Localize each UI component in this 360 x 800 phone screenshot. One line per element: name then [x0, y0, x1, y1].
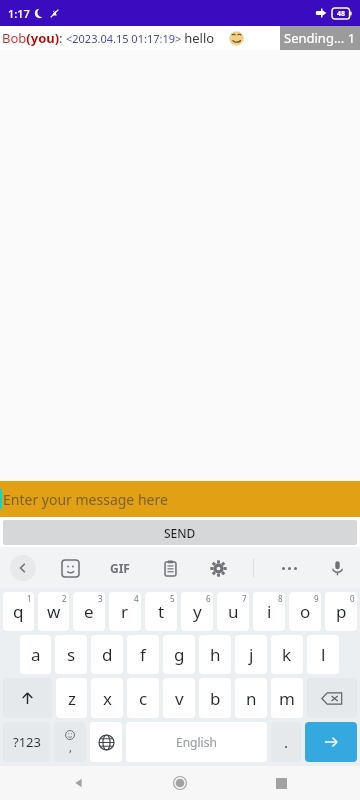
button[interactable]: GIF: [105, 553, 135, 583]
staticText: f: [140, 643, 146, 666]
staticText: t: [158, 600, 165, 623]
button[interactable]: Change language: [90, 722, 122, 762]
staticText: 5: [170, 593, 175, 604]
button[interactable]: Clipboard: [157, 555, 183, 581]
button[interactable]: a: [20, 635, 51, 674]
staticText: b: [210, 687, 221, 710]
staticText: Enter your message here: [3, 490, 168, 509]
staticText: .: [284, 732, 289, 752]
staticText: 9: [314, 593, 319, 604]
staticText: n: [246, 687, 257, 710]
button[interactable]: Emoji and comma: [54, 722, 86, 762]
button[interactable]: Recent apps: [259, 766, 303, 800]
button[interactable]: Back: [57, 766, 101, 800]
button[interactable]: q: [3, 592, 34, 631]
button[interactable]: i: [253, 592, 285, 631]
button[interactable]: SEND: [3, 520, 357, 545]
button[interactable]: u: [217, 592, 249, 631]
staticText: h: [210, 643, 221, 666]
staticText: 48: [337, 9, 346, 19]
staticText: q: [13, 600, 24, 623]
button[interactable]: Enter your message here: [0, 481, 360, 517]
button[interactable]: k: [271, 635, 303, 674]
button[interactable]: c: [127, 678, 159, 718]
staticText: o: [300, 600, 311, 623]
button[interactable]: e: [73, 592, 105, 631]
button[interactable]: Settings: [205, 555, 231, 581]
button[interactable]: s: [55, 635, 87, 674]
staticText: y: [193, 600, 202, 623]
button[interactable]: p: [325, 592, 357, 631]
staticText: x: [103, 687, 112, 710]
staticText: GIF: [110, 560, 130, 576]
staticText: SEND: [164, 525, 196, 541]
staticText: 8: [278, 593, 283, 604]
staticText: 2: [62, 593, 67, 604]
button[interactable]: v: [163, 678, 195, 718]
button[interactable]: Home: [158, 766, 202, 800]
staticText: s: [67, 643, 76, 666]
staticText: 6: [206, 593, 211, 604]
staticText: a: [31, 643, 41, 666]
staticText: c: [139, 687, 148, 710]
staticText: i: [267, 600, 272, 623]
button[interactable]: r: [109, 592, 141, 631]
staticText: ,: [69, 740, 72, 755]
staticText: g: [174, 643, 185, 666]
staticText: j: [249, 643, 254, 666]
button[interactable]: h: [199, 635, 231, 674]
button[interactable]: Backspace: [307, 678, 357, 718]
button[interactable]: f: [127, 635, 159, 674]
staticText: Sending... 1: [284, 29, 356, 47]
staticText: ?123: [13, 733, 41, 751]
button[interactable]: t: [145, 592, 177, 631]
button[interactable]: Period: [271, 722, 301, 762]
staticText: m: [279, 687, 295, 710]
staticText: v: [175, 687, 184, 710]
button[interactable]: m: [271, 678, 303, 718]
staticText: r: [121, 600, 129, 623]
button[interactable]: d: [91, 635, 123, 674]
staticText: Bob(you): <2023.04.15 01:17:19> hello: [2, 29, 218, 47]
button[interactable]: Symbols: [3, 722, 50, 762]
staticText: w: [47, 600, 61, 623]
button[interactable]: x: [91, 678, 123, 718]
button[interactable]: z: [56, 678, 87, 718]
staticText: d: [102, 643, 113, 666]
button[interactable]: b: [199, 678, 231, 718]
button[interactable]: g: [163, 635, 195, 674]
button[interactable]: y: [181, 592, 213, 631]
staticText: p: [336, 600, 347, 623]
button[interactable]: More options: [276, 555, 302, 581]
staticText: 4: [134, 593, 139, 604]
button[interactable]: j: [235, 635, 267, 674]
button[interactable]: Back: [10, 555, 36, 581]
button[interactable]: Send: [305, 722, 357, 762]
button[interactable]: l: [307, 635, 339, 674]
staticText: l: [321, 643, 326, 666]
button[interactable]: o: [289, 592, 321, 631]
staticText: 1: [27, 593, 32, 604]
button[interactable]: Stickers: [57, 555, 83, 581]
staticText: k: [282, 643, 292, 666]
button[interactable]: Space: [126, 722, 267, 762]
button[interactable]: Voice input: [324, 555, 350, 581]
staticText: 7: [242, 593, 247, 604]
staticText: 0: [350, 593, 355, 604]
button[interactable]: n: [235, 678, 267, 718]
button[interactable]: w: [38, 592, 69, 631]
staticText: English: [176, 734, 217, 750]
staticText: z: [68, 687, 76, 710]
staticText: e: [84, 600, 94, 623]
button[interactable]: Shift: [3, 678, 52, 718]
staticText: 1:17: [8, 6, 30, 21]
staticText: 3: [98, 593, 103, 604]
staticText: u: [228, 600, 239, 623]
